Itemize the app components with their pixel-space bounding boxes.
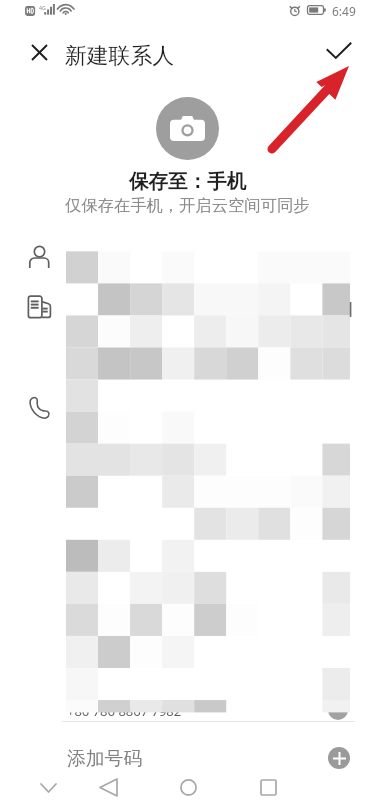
button[interactable]: 关闭 (21, 34, 58, 71)
button[interactable]: 添加 (328, 747, 350, 769)
button[interactable]: 添加头像 (156, 97, 219, 160)
button[interactable]: 返回 (90, 771, 127, 804)
button[interactable]: 最近任务 (250, 771, 287, 804)
staticText: 6:49 (332, 3, 356, 19)
button[interactable]: 保存 (320, 32, 358, 70)
staticText: 仅保存在手机，开启云空间可同步 (65, 195, 310, 216)
button[interactable]: 收起键盘 (30, 771, 67, 804)
button[interactable]: 删除号码 (328, 700, 348, 720)
staticText: 新建联系人 (65, 42, 174, 69)
staticText: 保存至：手机 (129, 169, 246, 194)
button[interactable]: 添加号码 (0, 726, 374, 771)
staticText: 添加号码 (67, 747, 143, 771)
staticText: 4G (39, 4, 46, 11)
button[interactable]: 主页 (170, 771, 207, 804)
staticText: +86 786 8867 7982 (67, 702, 182, 720)
